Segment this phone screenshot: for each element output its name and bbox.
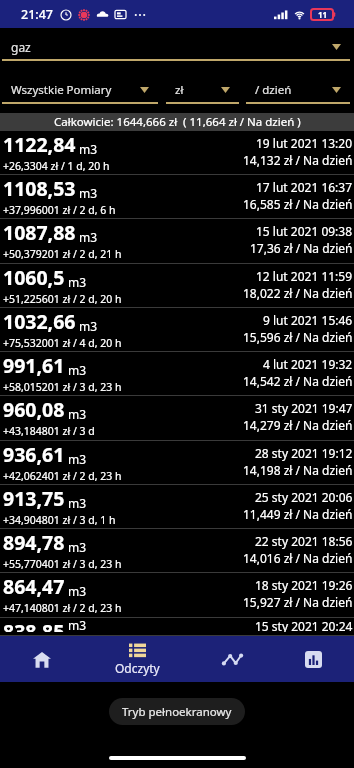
staticText: m3 [79,318,98,334]
button[interactable]: Tryb pełnoekranowy [109,698,245,725]
staticText: 17 lut 2021 16:37 [256,179,353,195]
staticText: Tryb pełnoekranowy [122,704,232,720]
staticText: 4 lut 2021 19:32 [263,356,353,372]
staticText: 28 sty 2021 19:12 [255,445,353,461]
staticText: +50,379201 zł / 2 d, 21 h [3,247,122,260]
staticText: 25 sty 2021 20:06 [255,489,353,505]
staticText: 936,61 [3,441,65,468]
staticText: m3 [68,617,87,631]
staticText: 864,47 [3,573,65,600]
staticText: 31 sty 2021 19:47 [255,400,353,416]
staticText: 838,85 [3,618,65,632]
button[interactable]: 936,61 [0,441,354,485]
staticText: 894,78 [3,529,65,556]
button[interactable]: Trend chart [191,636,273,682]
staticText: 21:47 [21,6,54,23]
button[interactable]: / dzień [246,73,350,104]
button[interactable]: 838,85 [0,618,354,636]
staticText: +43,184801 zł / 3 d [3,424,95,437]
staticText: 15,596 zł / Na dzień [243,329,353,345]
staticText: 14,198 zł / Na dzień [243,462,353,478]
button[interactable]: 1087,88 [0,219,354,264]
staticText: 18 sty 2021 19:26 [255,577,353,593]
staticText: Odczyty [115,660,160,676]
staticText: 1122,84 [3,131,76,158]
button[interactable]: 1032,66 [0,308,354,352]
staticText: Wszystkie Pomiary [11,82,140,98]
staticText: 16,585 zł / Na dzień [243,196,353,212]
button[interactable]: 913,75 [0,485,354,529]
staticText: +42,062401 zł / 2 d, 23 h [3,469,122,481]
staticText: m3 [79,229,98,245]
staticText: 14,016 zł / Na dzień [243,550,353,566]
button[interactable]: zł [166,73,239,104]
staticText: 12 lut 2021 11:59 [256,268,353,284]
staticText: m3 [68,406,87,422]
staticText: 14,279 zł / Na dzień [243,417,353,433]
staticText: m3 [79,141,98,157]
staticText: 913,75 [3,485,65,512]
staticText: +26,3304 zł / 1 d, 20 h [3,159,110,171]
staticText: 22 sty 2021 18:56 [255,533,353,549]
button[interactable]: gaz [2,30,350,61]
staticText: m3 [68,451,87,467]
button[interactable]: Home [0,636,83,682]
staticText: +75,532001 zł / 4 d, 20 h [3,336,122,348]
staticText: m3 [68,539,87,555]
staticText: 17,36 zł / Na dzień [250,240,353,256]
button[interactable]: 894,78 [0,529,354,573]
staticText: m3 [79,185,98,201]
staticText: 1108,53 [3,175,76,202]
button[interactable]: Statistics [273,636,354,682]
staticText: 9 lut 2021 15:46 [263,312,353,328]
staticText: +47,140801 zł / 2 d, 23 h [3,601,122,614]
button[interactable]: 991,61 [0,352,354,396]
staticText: 1087,88 [3,219,76,246]
staticText: 15,927 zł / Na dzień [243,594,353,610]
button[interactable]: 1060,5 [0,264,354,308]
staticText: m3 [68,495,87,511]
staticText: +55,770401 zł / 3 d, 23 h [3,557,122,569]
staticText: 19 lut 2021 13:20 [256,135,353,151]
button[interactable]: 960,08 [0,396,354,441]
staticText: +51,225601 zł / 2 d, 20 h [3,292,122,304]
staticText: 14,542 zł / Na dzień [243,373,353,389]
staticText: 15 sty 2021 20:24 [255,618,353,632]
staticText: 11,449 zł / Na dzień [243,506,353,522]
button[interactable]: 1122,84 [0,131,354,175]
staticText: 18,022 zł / Na dzień [243,285,353,301]
staticText: 14,132 zł / Na dzień [243,152,353,168]
button[interactable]: 1108,53 [0,175,354,219]
button[interactable]: Odczyty [83,636,191,682]
staticText: gaz [11,39,332,55]
button[interactable]: 864,47 [0,573,354,618]
staticText: m3 [68,583,87,599]
staticText: 960,08 [3,396,65,423]
staticText: Całkowicie: 1644,666 zł ( 11,664 zł / Na… [54,114,301,130]
staticText: +37,996001 zł / 2 d, 6 h [3,203,116,215]
staticText: 15 lut 2021 09:38 [256,223,353,239]
staticText: 11 [318,9,328,20]
staticText: m3 [68,274,87,290]
staticText: 991,61 [3,352,65,379]
staticText: / dzień [255,82,332,98]
staticText: 1032,66 [3,308,76,335]
staticText: +34,904801 zł / 3 d, 1 h [3,513,116,525]
staticText: m3 [68,362,87,378]
button[interactable]: Wszystkie Pomiary [2,73,158,104]
staticText: 1060,5 [3,264,65,291]
staticText: +58,015201 zł / 3 d, 23 h [3,380,122,392]
staticText: zł [175,82,221,98]
